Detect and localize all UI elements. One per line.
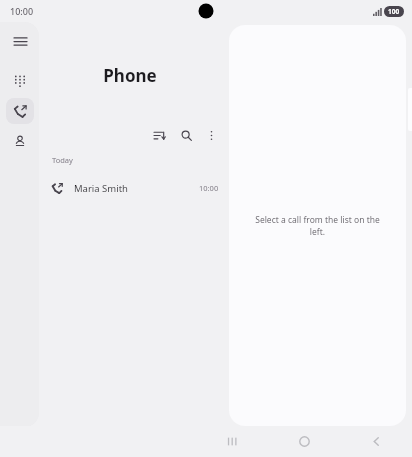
button[interactable]: Recents <box>6 98 34 124</box>
button[interactable]: Maria Smith <box>39 175 229 201</box>
button[interactable]: Home <box>268 426 340 457</box>
staticText: 100 <box>388 7 400 16</box>
staticText: Select a call from the list on the left. <box>255 214 380 238</box>
staticText: Maria Smith <box>74 182 128 195</box>
button[interactable]: Menu <box>6 28 34 54</box>
button[interactable]: Contacts <box>6 128 34 154</box>
button[interactable]: Recent apps <box>196 426 268 457</box>
staticText: Today <box>52 155 73 165</box>
button[interactable]: Search <box>176 125 196 145</box>
staticText: 10:00 <box>10 5 34 17</box>
button[interactable]: Sort <box>149 125 169 145</box>
staticText: 10:00 <box>199 183 219 193</box>
button[interactable]: Back <box>340 426 412 457</box>
button[interactable]: More options <box>201 125 221 145</box>
button[interactable]: Keypad <box>6 68 34 94</box>
staticText: Phone <box>39 64 221 87</box>
